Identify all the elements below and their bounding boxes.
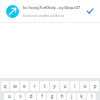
staticText: j (71, 93, 73, 100)
button[interactable]: q (1, 81, 9, 91)
button[interactable]: bc1qstg7ixf0kdy...xy34quz0740hj (0, 0, 100, 22)
staticText: s (19, 93, 22, 100)
staticText: u (63, 83, 67, 90)
button[interactable]: u (60, 81, 69, 91)
button[interactable]: s (15, 93, 25, 100)
button[interactable]: o (80, 81, 89, 91)
staticText: g (50, 93, 54, 100)
staticText: l (91, 93, 93, 100)
button[interactable]: k (77, 93, 86, 100)
button[interactable]: j (67, 93, 76, 100)
button[interactable]: y (50, 81, 59, 91)
staticText: k (80, 93, 83, 100)
button[interactable]: t (40, 81, 49, 91)
button[interactable]: e (20, 81, 29, 91)
staticText: t (44, 83, 46, 90)
button[interactable]: h (57, 93, 66, 100)
staticText: i (74, 83, 76, 90)
staticText: w (13, 83, 17, 90)
button[interactable]: a (4, 93, 14, 100)
staticText: e (23, 83, 26, 90)
button[interactable]: r (30, 81, 39, 91)
staticText: y (53, 83, 56, 90)
staticText: r (33, 83, 36, 90)
staticText: bc1qstg7ixf0kdy...xy34quz0740hj (23, 5, 82, 11)
staticText: f (41, 93, 43, 100)
button[interactable]: l (87, 93, 96, 100)
button[interactable]: f (37, 93, 46, 100)
button[interactable]: g (47, 93, 56, 100)
staticText: a (8, 93, 11, 100)
button[interactable]: i (70, 81, 79, 91)
button[interactable]: d (26, 93, 36, 100)
staticText: p (93, 83, 97, 90)
staticText: q (3, 83, 7, 90)
button[interactable]: p (90, 81, 99, 91)
staticText: d (29, 93, 33, 100)
staticText: External wallet address (23, 13, 65, 18)
staticText: o (83, 83, 87, 90)
button[interactable]: w (10, 81, 19, 91)
staticText: h (60, 93, 64, 100)
button[interactable]: Selected (85, 6, 95, 16)
